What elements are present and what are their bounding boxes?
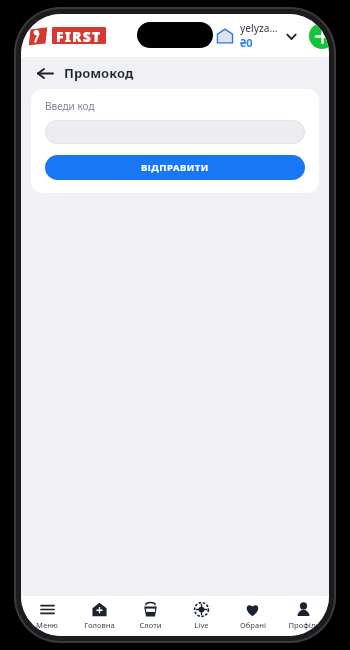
staticText: Промокод xyxy=(64,64,134,82)
button[interactable] xyxy=(45,120,305,144)
staticText: FIRST xyxy=(56,27,102,44)
staticText: Введи код xyxy=(45,99,95,113)
button[interactable]: ВІДПРАВИТИ xyxy=(45,155,305,180)
button[interactable]: Меню xyxy=(21,596,73,636)
staticText: Головна xyxy=(84,620,115,630)
staticText: Слоти xyxy=(139,620,162,630)
button[interactable]: Deposit xyxy=(309,23,329,49)
staticText: Live xyxy=(194,620,209,630)
staticText: ₴0 xyxy=(240,35,253,50)
button[interactable]: Слоти xyxy=(125,596,176,636)
button[interactable]: Expand account xyxy=(283,28,299,44)
button[interactable]: Logo xyxy=(27,25,49,47)
button[interactable]: yelyza… xyxy=(240,19,278,52)
button[interactable]: Головна xyxy=(73,596,125,636)
button[interactable]: Обрані xyxy=(227,596,278,636)
button[interactable]: Live xyxy=(176,596,227,636)
staticText: yelyza… xyxy=(240,21,278,35)
staticText: ВІДПРАВИТИ xyxy=(141,161,209,174)
staticText: Меню xyxy=(36,620,58,630)
button[interactable]: Профіль xyxy=(278,596,329,636)
staticText: Обрані xyxy=(240,620,266,630)
staticText: Профіль xyxy=(288,620,320,630)
button[interactable]: Back xyxy=(33,61,57,85)
